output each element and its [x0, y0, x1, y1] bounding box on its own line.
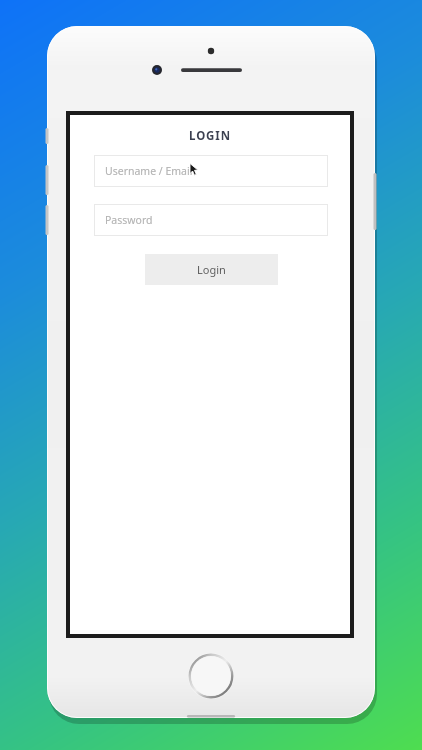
staticText: LOGIN	[189, 128, 231, 144]
staticText: Login	[197, 262, 226, 277]
button[interactable]: Login	[145, 254, 278, 285]
staticText: Username / Email	[105, 164, 193, 178]
other: Pointer	[189, 163, 203, 177]
button[interactable]: Password	[94, 204, 328, 236]
staticText: Password	[105, 213, 153, 227]
button[interactable]: Username / Email	[94, 155, 328, 187]
